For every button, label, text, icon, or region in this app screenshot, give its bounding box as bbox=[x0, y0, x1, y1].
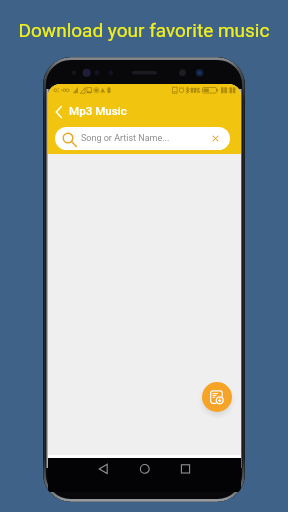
staticText: Mp3 Music bbox=[69, 104, 127, 118]
button[interactable]: Song or Artist Name... bbox=[55, 127, 230, 150]
button[interactable]: Download bbox=[202, 382, 232, 412]
button[interactable]: Clear bbox=[209, 132, 222, 145]
staticText: Download your favorite music bbox=[0, 19, 288, 41]
staticText: Song or Artist Name... bbox=[81, 133, 170, 144]
button[interactable]: Back bbox=[50, 103, 68, 121]
